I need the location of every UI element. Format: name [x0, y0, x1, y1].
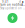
staticText: Turn on notifications	[0, 3, 25, 6]
staticText: ıl ▮	[19, 0, 23, 3]
staticText: Stay updated on new activity	[0, 6, 25, 10]
staticText: 9:41	[2, 0, 9, 3]
